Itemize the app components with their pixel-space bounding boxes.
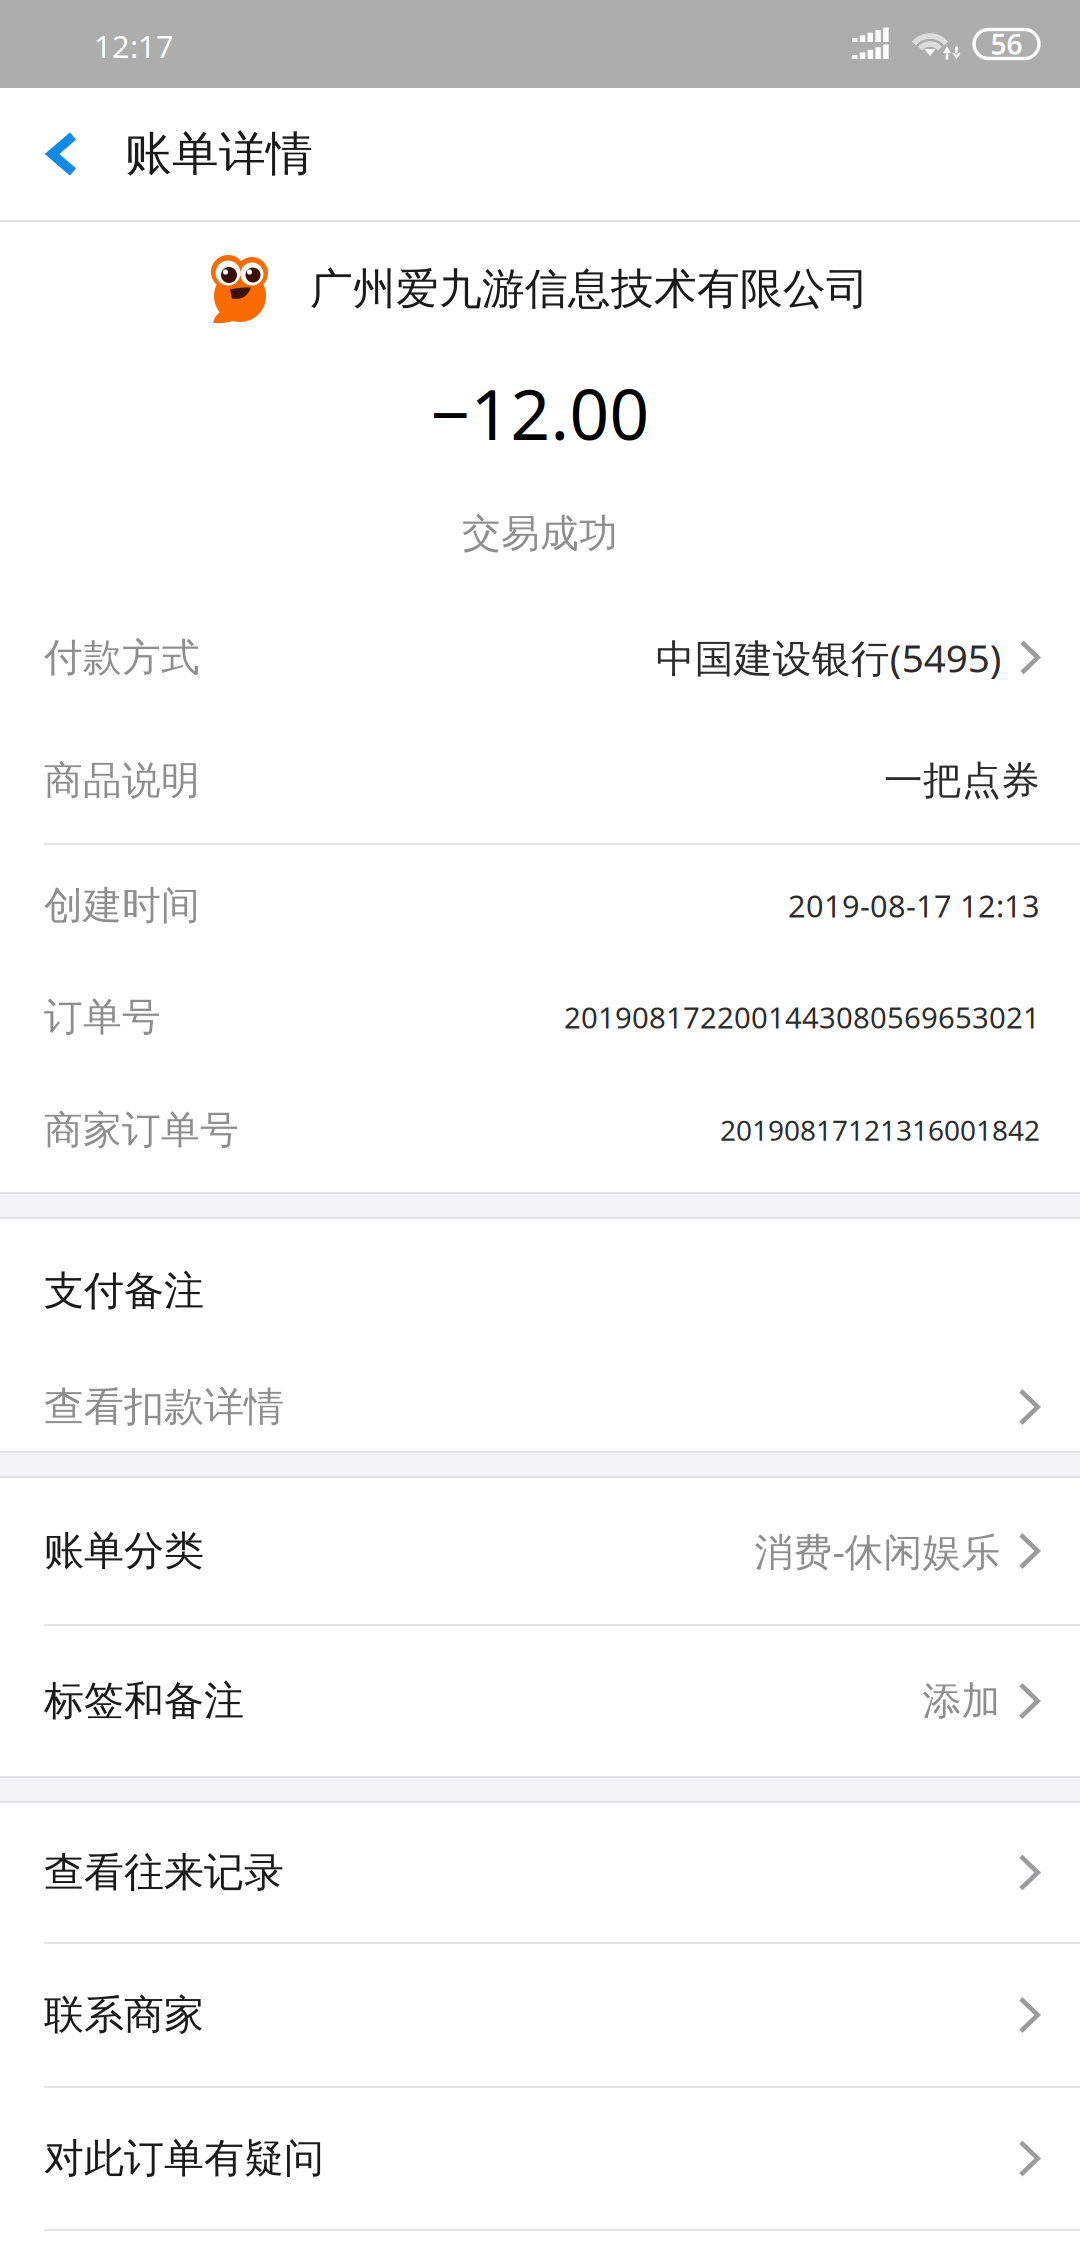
staticText: 2019081722001443080569653021 [564, 997, 1040, 1036]
staticText: 联系商家 [44, 1990, 204, 2039]
staticText: 对此订单有疑问 [44, 2134, 324, 2183]
staticText: 账单分类 [44, 1526, 204, 1575]
staticText: 账单详情 [125, 125, 313, 183]
staticText: 广州爱九游信息技术有限公司 [310, 263, 869, 315]
staticText: 中国建设银行(5495) [656, 632, 1002, 683]
button[interactable]: 联系商家 [0, 1944, 1080, 2086]
staticText: 20190817121316001842 [720, 1111, 1040, 1149]
button[interactable]: 标签和备注 [0, 1626, 1080, 1776]
button[interactable]: 付款方式 [0, 597, 1080, 718]
staticText: 56 [990, 25, 1022, 63]
staticText: 创建时间 [44, 882, 200, 929]
staticText: 查看往来记录 [44, 1848, 284, 1897]
staticText: −12.00 [430, 367, 649, 459]
staticText: 12:17 [94, 26, 174, 66]
button[interactable]: Back [0, 88, 125, 220]
button[interactable]: 查看扣款详情 [0, 1363, 1080, 1451]
staticText: 商品说明 [44, 757, 200, 804]
button[interactable]: 账单分类 [0, 1478, 1080, 1624]
staticText: 查看扣款详情 [44, 1382, 284, 1431]
staticText: 支付备注 [44, 1266, 204, 1315]
staticText: 标签和备注 [44, 1676, 244, 1725]
staticText: 订单号 [44, 993, 161, 1041]
staticText: 2019-08-17 12:13 [788, 885, 1040, 926]
staticText: 一把点券 [884, 757, 1040, 804]
staticText: 商家订单号 [44, 1106, 239, 1154]
staticText: 交易成功 [462, 510, 618, 557]
button[interactable]: 对此订单有疑问 [0, 2088, 1080, 2229]
staticText: 添加 [922, 1677, 1000, 1725]
staticText: 付款方式 [44, 634, 200, 681]
button[interactable]: 查看往来记录 [0, 1803, 1080, 1942]
staticText: 消费-休闲娱乐 [754, 1525, 1000, 1577]
